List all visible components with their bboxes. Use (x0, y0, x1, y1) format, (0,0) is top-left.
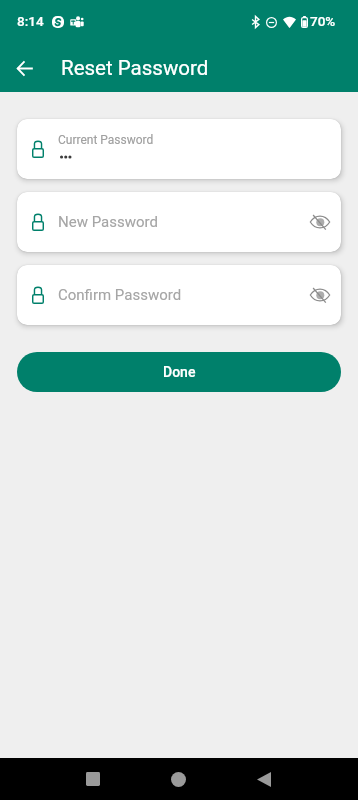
staticText: Current Password (58, 133, 154, 147)
button[interactable]: New Password (17, 192, 341, 252)
button[interactable]: Current Password (17, 119, 341, 179)
button[interactable]: Home (157, 758, 200, 800)
staticText: 8:14 (17, 13, 44, 29)
button[interactable]: Confirm Password (17, 265, 341, 325)
button[interactable]: Done (17, 352, 341, 392)
button[interactable]: Back (8, 51, 42, 85)
button[interactable]: Show password (303, 205, 337, 239)
staticText: Reset Password (61, 56, 209, 80)
staticText: 70% (310, 13, 336, 29)
button[interactable]: Recent apps (71, 758, 114, 800)
button[interactable]: Back (242, 758, 285, 800)
staticText: New Password (58, 213, 158, 231)
button[interactable]: Show password (303, 278, 337, 312)
staticText: Confirm Password (58, 286, 182, 304)
staticText: Done (163, 364, 196, 380)
